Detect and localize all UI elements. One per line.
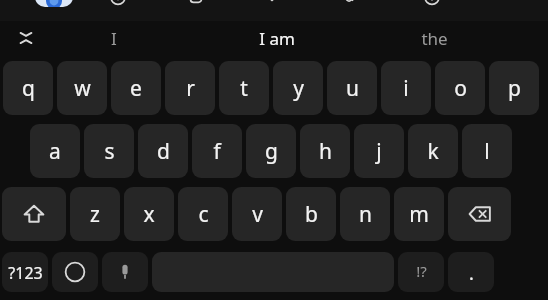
staticText: f xyxy=(213,137,221,166)
button[interactable]: c xyxy=(178,187,228,241)
staticText: u xyxy=(346,74,359,103)
button[interactable]: n xyxy=(340,187,390,241)
staticText: p xyxy=(508,74,521,103)
button[interactable]: Toolbar action xyxy=(338,0,366,8)
staticText: t xyxy=(240,74,248,103)
button[interactable]: ?123 xyxy=(2,252,48,292)
staticText: l xyxy=(484,137,490,166)
staticText: o xyxy=(454,74,467,103)
button[interactable]: Emoji xyxy=(52,252,98,292)
staticText: . xyxy=(469,261,474,286)
button[interactable]: e xyxy=(111,61,161,115)
staticText: b xyxy=(305,200,318,229)
button[interactable]: p xyxy=(489,61,539,115)
button[interactable]: o xyxy=(435,61,485,115)
button[interactable]: Expand toolbar xyxy=(10,22,42,54)
staticText: w xyxy=(74,74,91,103)
staticText: ?123 xyxy=(8,262,43,284)
button[interactable]: l xyxy=(462,124,512,178)
button[interactable]: y xyxy=(273,61,323,115)
button[interactable]: a xyxy=(30,124,80,178)
button[interactable]: Toolbar action xyxy=(418,0,446,8)
button[interactable]: Gboard xyxy=(35,0,73,7)
button[interactable]: m xyxy=(394,187,444,241)
staticText: q xyxy=(22,74,35,103)
staticText: j xyxy=(376,137,382,166)
staticText: n xyxy=(359,200,372,229)
button[interactable]: s xyxy=(84,124,134,178)
staticText: s xyxy=(104,137,115,166)
button[interactable]: d xyxy=(138,124,188,178)
button[interactable]: b xyxy=(286,187,336,241)
button[interactable]: Backspace xyxy=(448,187,511,241)
button[interactable]: Toolbar action xyxy=(182,0,210,8)
button[interactable]: r xyxy=(165,61,215,115)
staticText: !? xyxy=(416,261,427,281)
button[interactable]: Toolbar action xyxy=(258,0,286,8)
button[interactable]: j xyxy=(354,124,404,178)
staticText: y xyxy=(293,74,304,103)
button[interactable]: g xyxy=(246,124,296,178)
staticText: m xyxy=(409,200,429,229)
staticText: e xyxy=(130,74,142,103)
button[interactable]: !? xyxy=(398,252,444,292)
staticText: x xyxy=(143,200,155,229)
button[interactable]: . xyxy=(448,252,494,292)
button[interactable]: x xyxy=(124,187,174,241)
button[interactable]: I am xyxy=(222,21,332,55)
staticText: c xyxy=(198,200,209,229)
button[interactable]: f xyxy=(192,124,242,178)
staticText: v xyxy=(252,200,263,229)
staticText: r xyxy=(186,74,195,103)
button[interactable]: h xyxy=(300,124,350,178)
button[interactable]: w xyxy=(57,61,107,115)
staticText: a xyxy=(49,137,61,166)
staticText: I am xyxy=(259,27,295,50)
button[interactable]: Shift xyxy=(2,187,66,241)
button[interactable]: k xyxy=(408,124,458,178)
button[interactable]: Toolbar action xyxy=(104,0,132,8)
staticText: the xyxy=(421,27,448,50)
button[interactable]: Voice input xyxy=(102,252,148,292)
staticText: z xyxy=(90,200,100,229)
button[interactable]: u xyxy=(327,61,377,115)
button[interactable]: i xyxy=(381,61,431,115)
button[interactable]: q xyxy=(3,61,53,115)
button[interactable]: v xyxy=(232,187,282,241)
button[interactable]: z xyxy=(70,187,120,241)
button[interactable]: t xyxy=(219,61,269,115)
staticText: I xyxy=(111,27,117,50)
button[interactable]: the xyxy=(379,21,489,55)
staticText: g xyxy=(265,137,278,166)
button[interactable]: I xyxy=(59,21,169,55)
staticText: i xyxy=(403,74,409,103)
staticText: k xyxy=(427,137,439,166)
staticText: h xyxy=(319,137,332,166)
staticText: d xyxy=(157,137,170,166)
